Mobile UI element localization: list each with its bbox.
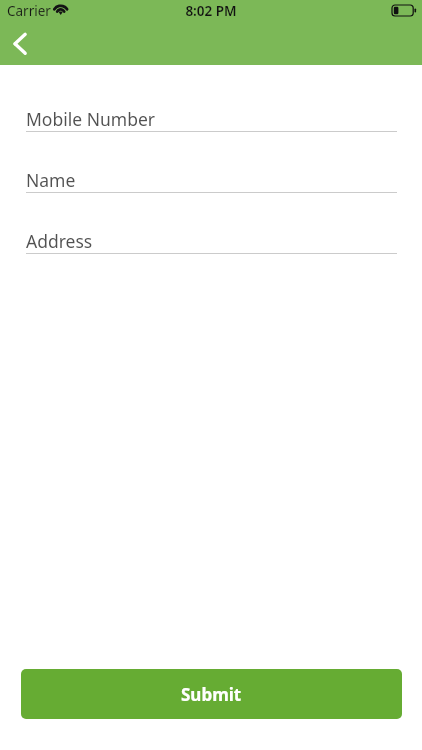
staticText: Carrier — [7, 2, 51, 20]
button[interactable]: Submit — [21, 669, 402, 719]
staticText: Address — [26, 229, 93, 253]
staticText: Mobile Number — [26, 107, 156, 131]
staticText: Name — [26, 168, 76, 192]
button[interactable]: Back — [2, 26, 36, 60]
staticText: 8:02 PM — [0, 2, 422, 20]
button[interactable]: Name — [26, 166, 397, 193]
button[interactable]: Mobile Number — [26, 105, 397, 132]
button[interactable]: Address — [26, 227, 397, 254]
staticText: Submit — [181, 683, 242, 706]
